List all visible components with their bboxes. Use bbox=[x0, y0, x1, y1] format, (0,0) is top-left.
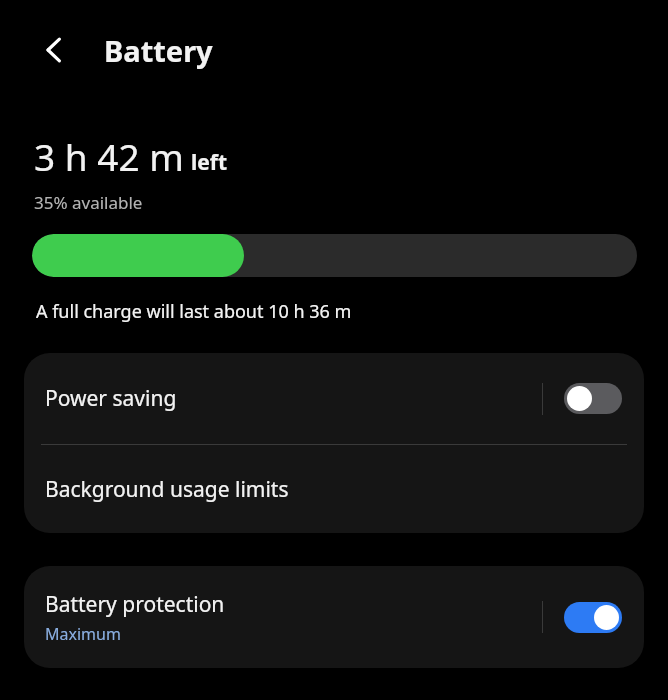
staticText: 3 h 42 m bbox=[34, 131, 184, 181]
button[interactable]: Background usage limits bbox=[24, 445, 644, 533]
button[interactable]: Battery protection bbox=[24, 566, 644, 668]
staticText: 35% available bbox=[34, 191, 143, 214]
staticText: Battery protection bbox=[45, 590, 225, 619]
staticText: Background usage limits bbox=[45, 475, 289, 504]
staticText: Battery bbox=[104, 31, 213, 70]
button[interactable]: Power saving bbox=[24, 353, 644, 444]
staticText: Power saving bbox=[45, 384, 177, 413]
staticText: Maximum bbox=[45, 623, 121, 645]
button[interactable]: Power saving toggle bbox=[564, 383, 622, 414]
button[interactable]: Battery protection toggle bbox=[564, 602, 622, 633]
staticText: left bbox=[191, 148, 228, 177]
button[interactable]: Back bbox=[32, 28, 76, 72]
staticText: A full charge will last about 10 h 36 m bbox=[36, 299, 352, 324]
